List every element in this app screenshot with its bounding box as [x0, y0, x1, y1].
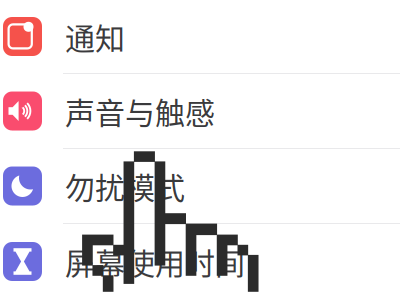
staticText: 屏幕使用时间	[65, 240, 245, 283]
staticText: 声音与触感	[65, 89, 215, 133]
button[interactable]: 声音与触感	[0, 74, 400, 148]
staticText: 勿扰模式	[65, 164, 185, 208]
staticText: 通知	[65, 15, 125, 58]
button[interactable]: 勿扰模式	[0, 149, 400, 223]
button[interactable]: 通知	[0, 0, 400, 73]
button[interactable]: 屏幕使用时间	[0, 224, 400, 299]
